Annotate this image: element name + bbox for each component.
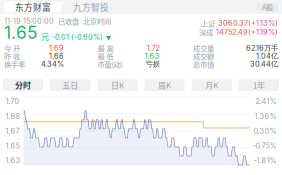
- staticText: 1.65: [4, 22, 38, 43]
- staticText: 昨 收: [4, 51, 20, 61]
- button[interactable]: 日K: [97, 79, 137, 91]
- staticText: 3060.37(+1.13%): [218, 19, 278, 27]
- staticText: 五日: [62, 79, 78, 91]
- staticText: 1.70: [5, 97, 19, 106]
- staticText: 1.66: [49, 52, 64, 60]
- staticText: 1.63: [144, 52, 159, 60]
- staticText: 1.67: [5, 127, 19, 135]
- staticText: 1.63: [5, 156, 20, 165]
- staticText: -0.01 (-0.60%): [52, 33, 103, 41]
- staticText: 1.72: [146, 44, 159, 52]
- button[interactable]: 五日: [50, 79, 90, 91]
- button[interactable]: A股: [257, 3, 278, 11]
- staticText: 换手率: [4, 59, 25, 69]
- staticText: 东方财富: [15, 1, 51, 13]
- staticText: 深成: [199, 27, 213, 37]
- staticText: 成交量: [193, 43, 214, 53]
- staticText: 1.69: [49, 44, 64, 52]
- staticText: 最 高: [97, 43, 113, 53]
- staticText: 北京时间: [83, 16, 111, 26]
- staticText: -0.75%: [252, 141, 276, 150]
- button[interactable]: 周K: [144, 79, 185, 91]
- staticText: 1.04亿: [256, 51, 278, 61]
- staticText: 日K: [111, 79, 124, 91]
- staticText: 分时: [15, 79, 31, 91]
- button[interactable]: 东方财富: [4, 1, 62, 12]
- staticText: 今 开: [4, 43, 20, 53]
- button[interactable]: 月K: [192, 79, 232, 91]
- staticText: 已收盘: [58, 16, 79, 26]
- staticText: 1.68: [5, 112, 20, 121]
- staticText: 1.65: [5, 141, 19, 150]
- staticText: 30.44亿: [250, 59, 278, 69]
- staticText: 11-19 15:00:00: [4, 17, 54, 25]
- staticText: 4.34%: [41, 60, 64, 68]
- staticText: 总市值: [193, 59, 214, 69]
- staticText: A股: [262, 2, 273, 12]
- staticText: 元: [41, 30, 49, 42]
- staticText: -1.81%: [253, 156, 276, 165]
- staticText: 2.41%: [255, 97, 276, 106]
- staticText: 九方智投: [73, 1, 109, 13]
- staticText: 亏损: [145, 59, 159, 69]
- staticText: 1.36%: [254, 112, 276, 121]
- staticText: 成交额: [193, 51, 214, 61]
- staticText: 14752.49(+1.19%): [216, 28, 278, 36]
- button[interactable]: 分时: [3, 79, 43, 91]
- staticText: 周K: [158, 79, 171, 91]
- staticText: 最 低: [97, 51, 113, 61]
- staticText: 0.30%: [253, 127, 276, 135]
- button[interactable]: 九方智投: [62, 1, 120, 12]
- button[interactable]: 1年: [239, 79, 279, 91]
- staticText: 月K: [205, 79, 218, 91]
- staticText: 1年: [253, 79, 265, 91]
- staticText: 上证: [201, 18, 215, 28]
- staticText: 62.16万手: [246, 43, 278, 53]
- staticText: 市盈(动): [97, 59, 122, 69]
